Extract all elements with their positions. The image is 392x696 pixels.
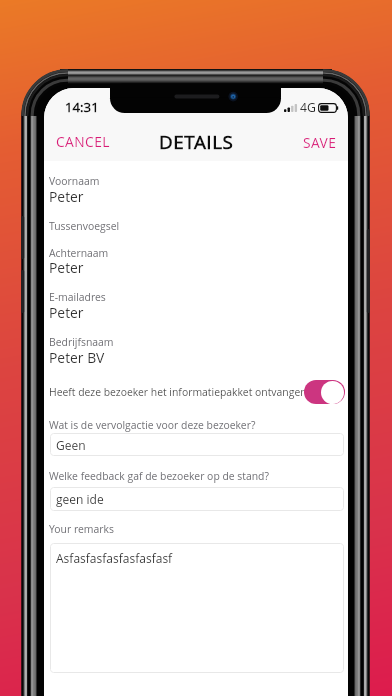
staticText: Peter [49,303,84,322]
button[interactable]: geen ide [50,487,344,511]
staticText: DETAILS [159,129,234,155]
staticText: Peter [49,258,84,277]
staticText: E-mailadres [49,290,106,304]
button[interactable]: CANCEL [44,123,123,160]
staticText: Tussenvoegsel [49,219,120,233]
staticText: Geen [56,437,86,453]
staticText: Heeft deze bezoeker het informatiepakket… [49,385,307,399]
staticText: CANCEL [56,132,110,151]
staticText: 14:31 [65,98,99,116]
button[interactable]: Asfasfasfasfasfasfasf [50,543,344,673]
staticText: SAVE [303,133,337,152]
staticText: Achternaam [49,246,109,260]
button[interactable]: Geen [50,433,344,456]
staticText: Welke feedback gaf de bezoeker op de sta… [49,469,269,483]
button[interactable]: SAVE [290,124,348,161]
staticText: Your remarks [49,522,114,536]
button[interactable]: Informatiepakket ontvangen [304,380,345,404]
staticText: Voornaam [49,174,100,188]
staticText: Peter [49,187,84,206]
staticText: Peter BV [49,348,105,367]
staticText: Asfasfasfasfasfasfasf [56,550,173,566]
staticText: 4G [300,99,316,116]
staticText: Wat is de vervolgactie voor deze bezoeke… [49,418,256,432]
staticText: geen ide [56,491,104,507]
staticText: Bedrijfsnaam [49,335,114,349]
